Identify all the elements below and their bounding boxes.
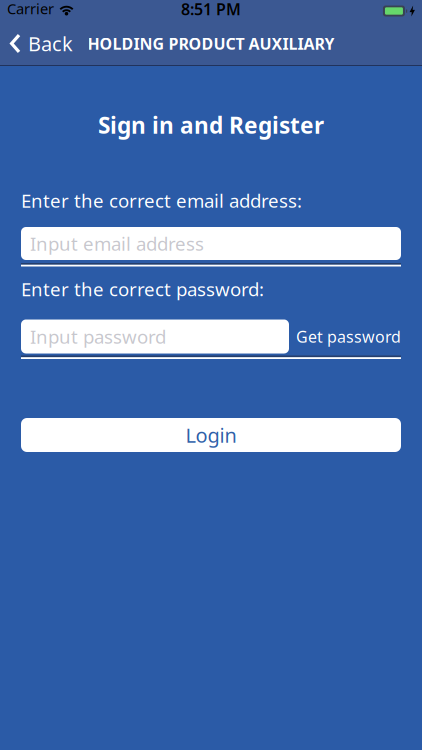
staticText: Carrier <box>7 0 54 18</box>
staticText: Enter the correct email address: <box>21 188 302 213</box>
staticText: Input email address <box>30 231 204 256</box>
staticText: 8:51 PM <box>181 0 241 20</box>
staticText: HOLDING PRODUCT AUXILIARY <box>87 33 334 54</box>
staticText: Back <box>28 30 73 57</box>
button[interactable]: Get password <box>296 326 401 347</box>
button[interactable]: Login <box>21 418 401 452</box>
staticText: Enter the correct password: <box>21 277 264 301</box>
staticText: Get password <box>296 326 401 347</box>
staticText: Sign in and Register <box>98 110 324 140</box>
staticText: Input password <box>30 324 166 349</box>
button[interactable]: Back <box>0 30 73 57</box>
staticText: Login <box>185 422 236 448</box>
